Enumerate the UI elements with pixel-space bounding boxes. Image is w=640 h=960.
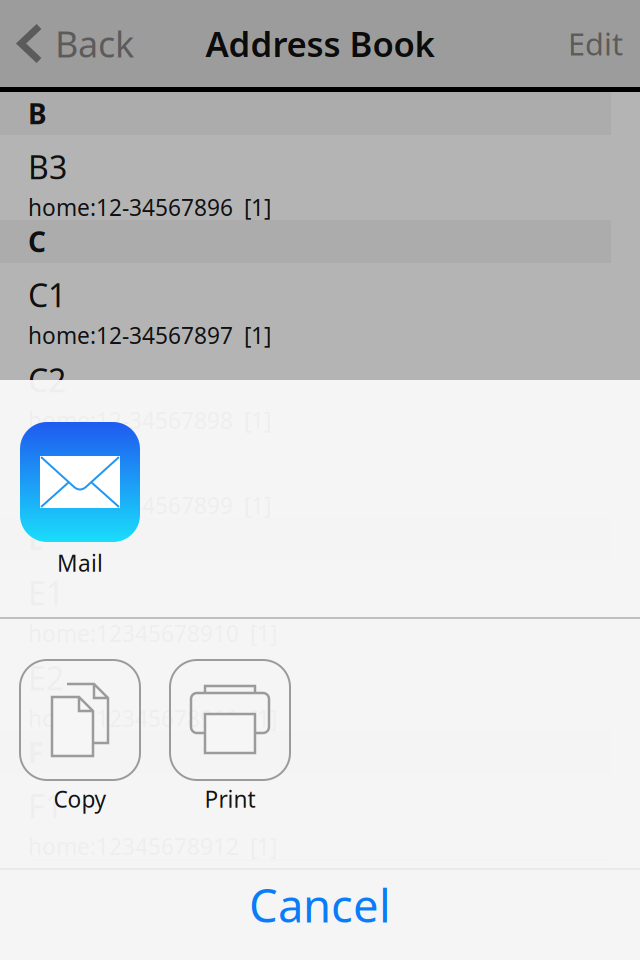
staticText: B	[28, 95, 47, 132]
staticText: B3	[28, 146, 67, 188]
staticText: C	[28, 223, 46, 260]
staticText: home:12345678910	[28, 618, 239, 648]
staticText: Edit	[568, 23, 623, 64]
button[interactable]: C2	[0, 348, 640, 433]
staticText: [1]	[244, 192, 271, 222]
staticText: C1	[28, 274, 66, 316]
staticText: Address Book	[205, 20, 434, 66]
button[interactable]: C1	[0, 263, 640, 348]
staticText: C2	[28, 359, 66, 401]
staticText: Print	[204, 784, 255, 814]
staticText: Cancel	[249, 875, 391, 935]
button[interactable]: Copy	[20, 619, 140, 855]
staticText: E	[28, 521, 44, 558]
button[interactable]: B3	[0, 135, 640, 220]
staticText: home:12-34567898	[28, 405, 233, 435]
button[interactable]: E2	[0, 646, 640, 731]
staticText: C3	[28, 444, 66, 486]
staticText: F1	[28, 785, 63, 827]
staticText: home:12-34567899	[28, 490, 233, 520]
button[interactable]: Back	[0, 0, 134, 87]
button[interactable]: Edit	[568, 0, 640, 87]
staticText: home:12-34567897	[28, 320, 233, 350]
button[interactable]: Print	[170, 619, 290, 855]
staticText: Back	[55, 20, 134, 67]
button[interactable]: F1	[0, 774, 640, 859]
button[interactable]: Cancel	[0, 870, 640, 960]
staticText: [1]	[244, 320, 271, 350]
button[interactable]: C3	[0, 433, 640, 518]
staticText: [1]	[250, 618, 277, 648]
button[interactable]: Mail	[0, 380, 160, 595]
staticText: home:12-34567896	[28, 192, 233, 222]
staticText: E2	[28, 657, 64, 699]
staticText: [1]	[250, 703, 277, 733]
staticText: Copy	[53, 784, 106, 814]
button[interactable]: E1	[0, 561, 640, 646]
staticText: Mail	[57, 548, 103, 578]
staticText: home:12345678911	[28, 703, 239, 733]
